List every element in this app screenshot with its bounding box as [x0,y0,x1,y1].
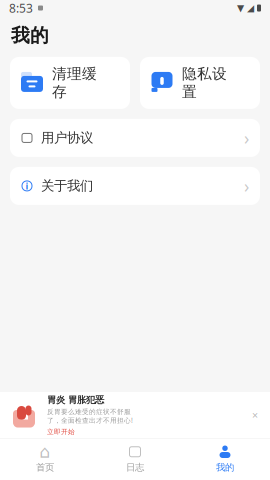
button[interactable]: 清理缓存 [10,57,130,109]
staticText: ▼ [237,3,244,13]
staticText: 我的 [216,462,234,473]
button[interactable]: 隐私设置 [140,57,260,109]
staticText: 我的 [11,24,49,47]
staticText: i [25,180,28,192]
staticText: 胃炎 胃胀犯恶 [47,394,104,406]
staticText: 立即开始 [47,428,75,436]
button[interactable]: i [0,167,270,205]
staticText: × [252,408,258,422]
button[interactable]: ⌂ [0,438,90,480]
staticText: 用户协议 [41,130,93,146]
staticText: 首页 [36,462,54,473]
staticText: 隐私设置 [182,65,227,101]
staticText: 反胃要么难受的症状不舒服了，全面检查出才不用担心! [47,408,133,425]
button[interactable]: 日志 [90,438,180,480]
button[interactable]: 用户协议 [0,119,270,157]
staticText: › [244,174,249,197]
staticText: ◢ [247,3,254,13]
staticText: › [244,126,249,149]
button[interactable]: 关闭广告 [249,409,261,421]
staticText: 关于我们 [41,178,93,194]
staticText: 清理缓存 [52,65,97,101]
button[interactable]: 我的 [180,438,270,480]
staticText: 8:53 [9,0,33,16]
button[interactable]: 立即开始 [47,428,75,436]
staticText: 日志 [126,462,144,473]
staticText: ⌂ [39,442,50,462]
